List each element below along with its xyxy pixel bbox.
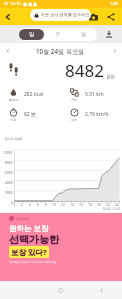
staticText: 삼성화재 <box>16 217 30 221</box>
button[interactable]: Download <box>101 26 117 42</box>
staticText: 4 <box>29 202 31 206</box>
staticText: 6000 <box>5 170 13 174</box>
staticText: (단위: 시간) <box>103 206 120 211</box>
button[interactable]: 시간 <box>0 106 61 126</box>
staticText: 지문 센서 전체를 덮으세요 <box>41 12 90 18</box>
staticText: 18 <box>88 202 92 206</box>
staticText: 22 <box>106 202 110 206</box>
button[interactable]: Back <box>81 281 122 299</box>
staticText: 8 <box>45 202 47 206</box>
staticText: 282 kcal <box>24 91 44 98</box>
staticText: 10000 <box>3 150 13 154</box>
staticText: 0 <box>13 202 15 206</box>
staticText: 12 <box>61 202 65 206</box>
button[interactable]: 칼로리 <box>0 86 61 106</box>
button[interactable]: 지문 센서 전체를 덮으세요 <box>30 9 91 21</box>
staticText: 월 <box>81 31 87 38</box>
staticText: 2000 <box>5 190 13 194</box>
staticText: 6 <box>37 202 39 206</box>
button[interactable]: Share <box>103 9 119 25</box>
button[interactable]: 거리 <box>61 86 122 106</box>
staticText: 20 <box>97 202 101 206</box>
staticText: 원하는 보장 <box>9 223 49 233</box>
staticText: (단위: 걸음) <box>5 136 23 141</box>
button[interactable]: 월 <box>72 29 96 40</box>
staticText: 82 분 <box>24 111 37 118</box>
staticText: 0 <box>11 200 13 204</box>
staticText: 16 <box>79 202 83 206</box>
staticText: 걸음 <box>106 74 116 80</box>
staticText: 74% <box>110 1 119 7</box>
button[interactable]: Next day <box>107 43 122 58</box>
staticText: 거리 <box>71 98 78 102</box>
staticText: 내 보험료 비교하고 지금 바로 가입하세요 <box>9 260 57 264</box>
staticText: 선택가능한 <box>9 233 59 246</box>
staticText: 속도 <box>71 118 78 122</box>
staticText: 2 <box>21 202 23 206</box>
staticText: 주 <box>55 31 61 38</box>
staticText: 8000 <box>5 160 13 164</box>
staticText: 시간 <box>10 118 17 122</box>
staticText: 보장 있다? <box>11 247 47 257</box>
button[interactable]: 일 <box>19 29 44 40</box>
button[interactable]: Previous day <box>0 43 15 58</box>
staticText: 2.79 km/h <box>85 111 109 118</box>
staticText: KT 10:10 <box>4 1 21 7</box>
staticText: 8482 <box>65 59 104 82</box>
staticText: 14 <box>70 202 74 206</box>
button[interactable]: 속도 <box>61 106 122 126</box>
staticText: 일 <box>29 31 35 38</box>
button[interactable]: 삼성화재 <box>0 213 122 281</box>
staticText: 칼로리 <box>9 98 19 102</box>
staticText: 4000 <box>5 180 13 184</box>
button[interactable]: 주 <box>46 29 70 40</box>
staticText: 24 <box>115 202 119 206</box>
button[interactable]: Home <box>40 281 81 299</box>
button[interactable]: Camera <box>85 9 101 25</box>
button[interactable]: Back <box>0 9 16 25</box>
staticText: 5.51 km <box>85 91 104 98</box>
staticText: 10월 24일 목요일 <box>36 47 85 55</box>
staticText: 10 <box>52 202 56 206</box>
